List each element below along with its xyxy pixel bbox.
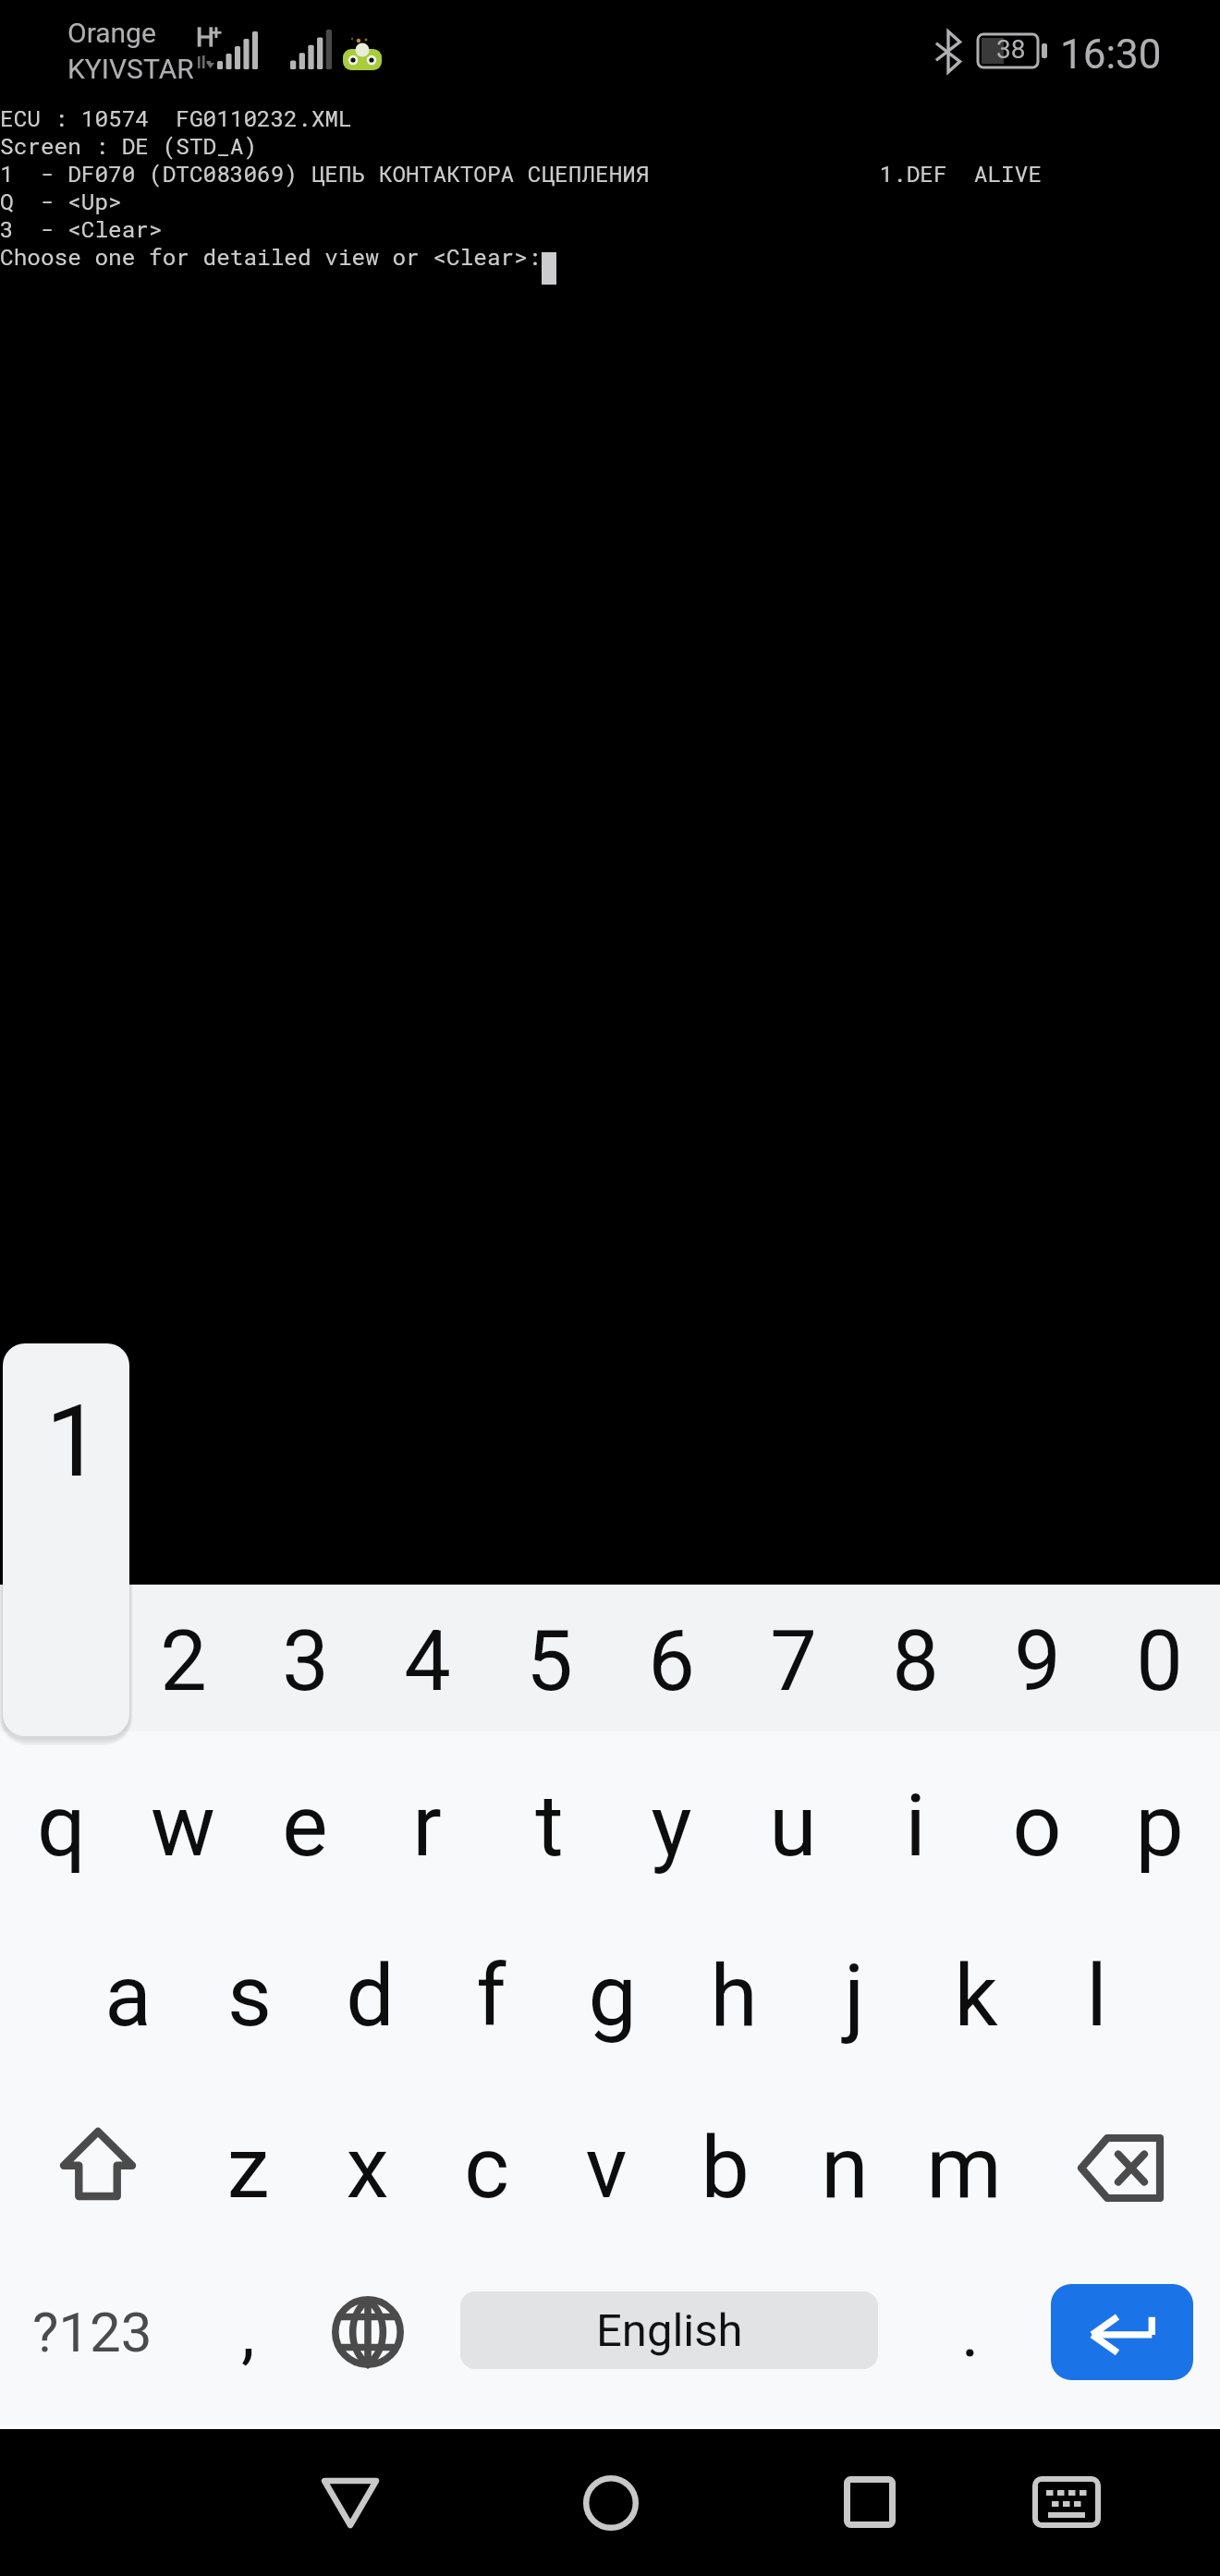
staticText: m	[926, 2118, 1002, 2218]
staticText: y	[651, 1776, 692, 1877]
staticText: H	[196, 22, 214, 53]
staticText: t	[535, 1776, 564, 1877]
staticText: 16:30	[1060, 30, 1162, 79]
button[interactable]: x	[308, 2082, 427, 2254]
button[interactable]: Shift	[0, 2082, 185, 2254]
button[interactable]: Backspace	[1035, 2082, 1220, 2254]
staticText: 38	[996, 34, 1026, 65]
button[interactable]: b	[665, 2082, 785, 2254]
staticText: l	[1086, 1946, 1107, 2047]
button[interactable]: g	[552, 1910, 673, 2082]
button[interactable]: 3	[244, 1588, 366, 1735]
button[interactable]: r	[366, 1740, 488, 1912]
staticText: 4	[404, 1613, 451, 1710]
button[interactable]: e	[244, 1740, 366, 1912]
button[interactable]: Enter	[1051, 2284, 1193, 2380]
button[interactable]: 6	[610, 1588, 732, 1735]
staticText: x	[346, 2118, 389, 2218]
staticText: r	[412, 1776, 442, 1877]
staticText: .	[961, 2292, 980, 2373]
button[interactable]: n	[785, 2082, 904, 2254]
staticText: v	[585, 2118, 628, 2218]
staticText: ,	[241, 2292, 255, 2373]
button[interactable]: y	[610, 1740, 732, 1912]
button[interactable]: ,	[188, 2246, 308, 2418]
button[interactable]: English	[460, 2291, 878, 2369]
staticText: q	[37, 1776, 86, 1877]
staticText: g	[588, 1946, 637, 2047]
button[interactable]: c	[427, 2082, 546, 2254]
staticText: u	[769, 1776, 817, 1877]
staticText: b	[701, 2118, 750, 2218]
button[interactable]: h	[673, 1910, 794, 2082]
button[interactable]: 5	[488, 1588, 610, 1735]
button[interactable]: m	[904, 2082, 1023, 2254]
button[interactable]: q	[0, 1740, 122, 1912]
staticText: c	[464, 2118, 509, 2218]
button[interactable]: 4	[366, 1588, 488, 1735]
button[interactable]: w	[122, 1740, 244, 1912]
staticText: k	[954, 1946, 998, 2047]
button[interactable]: 2	[122, 1588, 244, 1735]
button[interactable]: d	[310, 1910, 431, 2082]
button[interactable]: 1	[0, 1588, 122, 1735]
button[interactable]: j	[794, 1910, 915, 2082]
staticText: e	[282, 1776, 328, 1877]
button[interactable]: p	[1098, 1740, 1220, 1912]
button[interactable]: 8	[854, 1588, 976, 1735]
button[interactable]: Recent apps	[787, 2429, 953, 2576]
staticText: KYIVSTAR	[67, 53, 194, 85]
button[interactable]: s	[189, 1910, 310, 2082]
staticText: a	[104, 1946, 152, 2047]
button[interactable]: 0	[1098, 1588, 1220, 1735]
staticText: f	[476, 1946, 506, 2047]
staticText: 2	[160, 1613, 207, 1710]
staticText: 5	[526, 1613, 573, 1710]
button[interactable]: 9	[976, 1588, 1098, 1735]
staticText: 7	[770, 1613, 817, 1710]
staticText: d	[346, 1946, 395, 2047]
button[interactable]: .	[910, 2246, 1031, 2418]
button[interactable]: Hide keyboard	[983, 2429, 1150, 2576]
button[interactable]: Back	[267, 2429, 433, 2576]
staticText: 9	[1014, 1613, 1061, 1710]
staticText: 8	[892, 1613, 939, 1710]
staticText: w	[151, 1776, 215, 1877]
staticText: s	[227, 1946, 272, 2047]
button[interactable]: l	[1036, 1910, 1157, 2082]
staticText: ECU : 10574 FG0110232.XML Screen : DE (S…	[0, 103, 1043, 272]
staticText: ?123	[32, 2300, 152, 2364]
button[interactable]: z	[189, 2082, 308, 2254]
button[interactable]: k	[915, 1910, 1036, 2082]
staticText: 1	[45, 1383, 102, 1501]
button[interactable]: t	[488, 1740, 610, 1912]
button[interactable]: f	[431, 1910, 552, 2082]
staticText: 3	[282, 1613, 329, 1710]
staticText: +	[211, 21, 222, 44]
staticText: 0	[1136, 1613, 1183, 1710]
button[interactable]: o	[976, 1740, 1098, 1912]
button[interactable]: ?123	[0, 2246, 185, 2418]
button[interactable]: a	[67, 1910, 189, 2082]
staticText: h	[710, 1946, 758, 2047]
button[interactable]: i	[854, 1740, 976, 1912]
button[interactable]: 7	[732, 1588, 854, 1735]
staticText: 6	[648, 1613, 695, 1710]
staticText: z	[226, 2118, 270, 2218]
other: Bluetooth	[935, 31, 961, 72]
staticText: n	[821, 2118, 869, 2218]
button[interactable]: Home	[528, 2429, 694, 2576]
button[interactable]: v	[546, 2082, 665, 2254]
staticText: English	[596, 2304, 743, 2357]
button[interactable]: 1	[3, 1343, 129, 1736]
staticText: j	[844, 1946, 865, 2047]
staticText: Orange	[67, 17, 156, 49]
staticText: o	[1012, 1776, 1062, 1877]
button[interactable]: Change language	[310, 2246, 426, 2418]
button[interactable]: u	[732, 1740, 854, 1912]
staticText: i	[905, 1776, 926, 1877]
staticText: p	[1135, 1776, 1184, 1877]
